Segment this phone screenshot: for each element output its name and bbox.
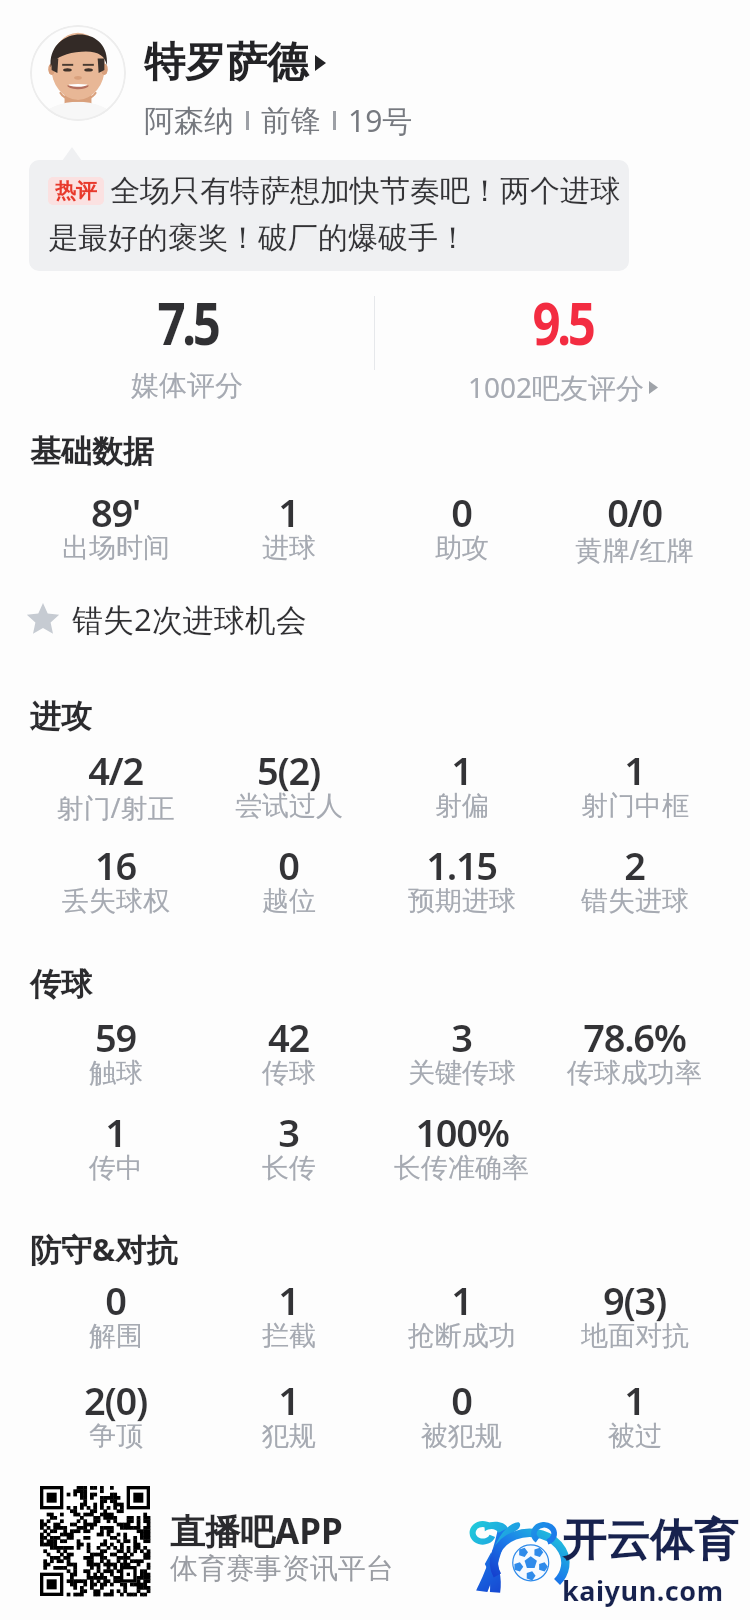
button[interactable]: 100%: [375, 1106, 548, 1192]
staticText: 前锋: [261, 102, 321, 140]
staticText: 5(2): [257, 744, 320, 796]
staticText: 78.6%: [583, 1011, 686, 1063]
staticText: 错失2次进球机会: [72, 598, 307, 640]
staticText: 传球: [30, 965, 92, 1004]
button[interactable]: 1: [202, 1374, 375, 1460]
button[interactable]: QR code: [40, 1486, 150, 1596]
staticText: 地面对抗: [581, 1319, 689, 1353]
button[interactable]: 特罗萨德: [144, 37, 308, 89]
staticText: 被犯规: [421, 1419, 502, 1453]
staticText: 阿森纳: [144, 102, 234, 140]
button[interactable]: 0/0: [548, 486, 721, 575]
button[interactable]: 5(2): [202, 744, 375, 830]
staticText: 越位: [262, 884, 316, 918]
staticText: 黄牌/红牌: [575, 531, 694, 568]
button[interactable]: 9(3): [548, 1274, 721, 1360]
staticText: 防守&对抗: [30, 1228, 178, 1270]
button[interactable]: 1: [548, 1374, 721, 1460]
button[interactable]: 16: [29, 839, 202, 925]
staticText: 59: [95, 1011, 136, 1063]
staticText: 是最好的褒奖！破厂的爆破手！: [48, 219, 468, 257]
staticText: 解围: [89, 1319, 143, 1353]
staticText: 射偏: [435, 789, 489, 823]
staticText: 直播吧APP: [170, 1507, 343, 1555]
button[interactable]: Kaiyun Sports: [446, 1513, 738, 1609]
staticText: 1002吧友评分: [468, 368, 645, 406]
staticText: 拦截: [262, 1319, 316, 1353]
staticText: 9.5: [533, 281, 592, 363]
button[interactable]: 42: [202, 1011, 375, 1097]
button[interactable]: 4/2: [29, 744, 202, 833]
staticText: 全场只有特萨想加快节奏吧！两个进球: [110, 172, 620, 210]
staticText: 1: [105, 1106, 126, 1158]
button[interactable]: 78.6%: [548, 1011, 721, 1097]
staticText: 长传准确率: [394, 1151, 529, 1185]
staticText: 0: [451, 486, 472, 538]
button[interactable]: 3: [202, 1106, 375, 1192]
staticText: 3: [278, 1106, 299, 1158]
staticText: 预期进球: [408, 884, 516, 918]
button[interactable]: 1: [548, 744, 721, 830]
staticText: 2: [624, 839, 645, 891]
staticText: 进攻: [30, 697, 92, 736]
staticText: 16: [95, 839, 136, 891]
button[interactable]: 1: [375, 1274, 548, 1360]
staticText: 被过: [608, 1419, 662, 1453]
button[interactable]: 2: [548, 839, 721, 925]
staticText: 抢断成功: [408, 1319, 516, 1353]
button[interactable]: 0: [375, 1374, 548, 1460]
button[interactable]: 7.5: [0, 281, 374, 403]
staticText: 1.15: [426, 839, 497, 891]
button[interactable]: 2(0): [29, 1374, 202, 1460]
staticText: 争顶: [89, 1419, 143, 1453]
staticText: 89': [91, 486, 140, 538]
button[interactable]: 0: [202, 839, 375, 925]
staticText: 100%: [415, 1106, 509, 1158]
staticText: 42: [268, 1011, 309, 1063]
staticText: kaiyun.com: [562, 1572, 724, 1609]
button[interactable]: 热评: [29, 160, 629, 271]
button[interactable]: 1: [202, 486, 375, 572]
staticText: 9(3): [603, 1274, 666, 1326]
staticText: 长传: [262, 1151, 316, 1185]
other: More ratings: [649, 381, 658, 394]
staticText: 1: [278, 486, 299, 538]
button[interactable]: 1.15: [375, 839, 548, 925]
staticText: 1: [278, 1374, 299, 1426]
staticText: 关键传球: [408, 1056, 516, 1090]
staticText: 媒体评分: [131, 368, 243, 403]
staticText: 出场时间: [62, 531, 170, 565]
button[interactable]: 3: [375, 1011, 548, 1097]
staticText: 开云体育: [562, 1513, 738, 1568]
button[interactable]: 0: [375, 486, 548, 572]
staticText: 传球成功率: [567, 1056, 702, 1090]
staticText: 1: [451, 744, 472, 796]
button[interactable]: Player photo: [30, 25, 126, 121]
staticText: 热评: [55, 178, 97, 204]
staticText: 0: [105, 1274, 126, 1326]
staticText: 3: [451, 1011, 472, 1063]
button[interactable]: 9.5: [375, 281, 750, 406]
staticText: 错失进球: [581, 884, 689, 918]
staticText: 丢失球权: [62, 884, 170, 918]
button[interactable]: 59: [29, 1011, 202, 1097]
staticText: 1: [278, 1274, 299, 1326]
other: Open player page: [315, 55, 326, 71]
button[interactable]: 错失2次进球机会: [26, 598, 750, 640]
staticText: 2(0): [84, 1374, 147, 1426]
staticText: 1: [624, 1374, 645, 1426]
staticText: 0/0: [607, 486, 662, 538]
staticText: 4/2: [88, 744, 143, 796]
staticText: 基础数据: [30, 432, 154, 471]
staticText: 1: [624, 744, 645, 796]
button[interactable]: 1: [202, 1274, 375, 1360]
button[interactable]: 1: [29, 1106, 202, 1192]
staticText: 0: [278, 839, 299, 891]
staticText: 触球: [89, 1056, 143, 1090]
button[interactable]: 0: [29, 1274, 202, 1360]
button[interactable]: 89': [29, 486, 202, 572]
staticText: 0: [451, 1374, 472, 1426]
staticText: 射门中框: [581, 789, 689, 823]
staticText: 7.5: [158, 281, 217, 363]
button[interactable]: 1: [375, 744, 548, 830]
